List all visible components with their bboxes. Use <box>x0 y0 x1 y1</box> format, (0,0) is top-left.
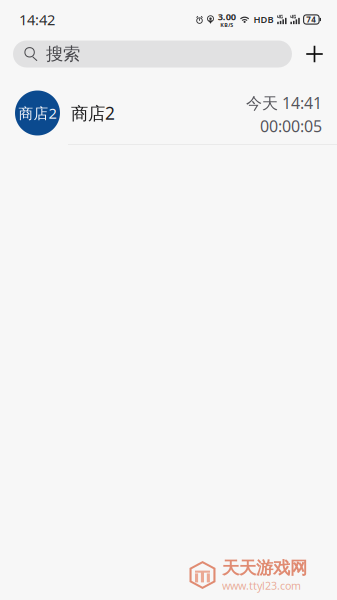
staticText: www.ttyl23.com <box>222 579 301 593</box>
staticText: 商店2 <box>18 103 56 123</box>
staticText: 74 <box>306 14 316 25</box>
button[interactable]: 搜索 <box>13 40 292 67</box>
staticText: 00:00:05 <box>260 115 322 137</box>
staticText: HDB <box>253 13 273 26</box>
staticText: 商店2 <box>71 101 115 124</box>
button[interactable]: 新建 <box>292 39 337 69</box>
staticText: 天天游戏网 <box>222 557 307 579</box>
staticText: 今天 14:41 <box>246 92 322 113</box>
button[interactable]: 商店2 <box>0 82 337 145</box>
staticText: 14:42 <box>19 10 55 29</box>
staticText: KB/S <box>220 21 233 28</box>
staticText: 搜索 <box>46 43 80 65</box>
staticText: 3.00 <box>218 10 236 23</box>
